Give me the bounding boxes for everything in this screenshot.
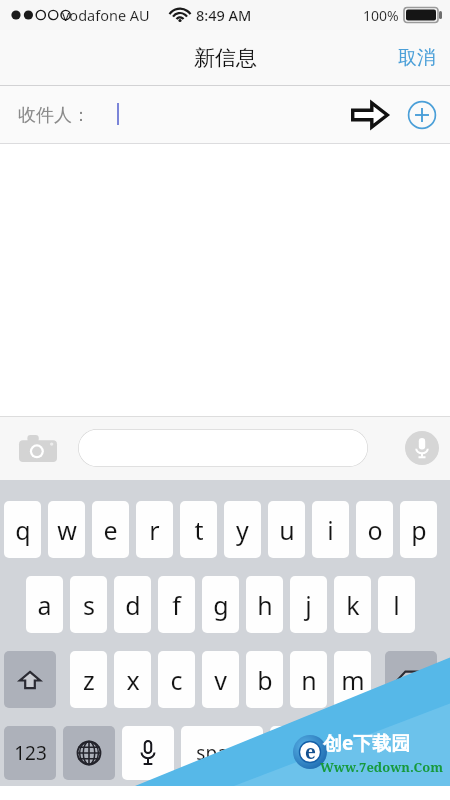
staticText: m — [341, 663, 365, 697]
button[interactable]: 取消 — [394, 40, 440, 76]
staticText: e — [103, 513, 118, 547]
staticText: 100% — [363, 6, 399, 25]
button[interactable]: g — [202, 576, 239, 633]
button[interactable]: p — [400, 501, 437, 558]
button[interactable]: t — [180, 501, 217, 558]
button[interactable]: c — [158, 651, 195, 708]
staticText: i — [327, 513, 334, 547]
button[interactable]: Switch language — [63, 726, 115, 780]
button[interactable]: 123 — [4, 726, 56, 780]
button[interactable] — [78, 429, 368, 467]
button[interactable]: space — [181, 726, 263, 780]
button[interactable]: b — [246, 651, 283, 708]
staticText: 收件人： — [18, 104, 90, 127]
staticText: p — [411, 513, 427, 547]
staticText: j — [305, 588, 312, 622]
button[interactable]: h — [246, 576, 283, 633]
staticText: h — [257, 588, 273, 622]
staticText: c — [170, 663, 183, 697]
button[interactable]: o — [356, 501, 393, 558]
button[interactable]: i — [312, 501, 349, 558]
staticText: g — [213, 588, 229, 622]
staticText: u — [279, 513, 295, 547]
button[interactable]: u — [268, 501, 305, 558]
staticText: t — [194, 513, 204, 547]
staticText: . — [349, 738, 356, 769]
staticText: y — [236, 513, 249, 547]
button[interactable]: Dictate — [405, 431, 439, 465]
staticText: f — [172, 588, 181, 622]
staticText: l — [393, 588, 400, 622]
staticText: vodafone AU — [62, 5, 150, 25]
button[interactable]: r — [136, 501, 173, 558]
button[interactable]: @ — [270, 726, 322, 780]
staticText: v — [214, 663, 227, 697]
button[interactable]: Camera — [16, 431, 60, 465]
staticText: space — [196, 740, 248, 766]
staticText: a — [37, 588, 52, 622]
button[interactable] — [382, 726, 442, 780]
staticText: 取消 — [398, 46, 436, 70]
button[interactable]: n — [290, 651, 327, 708]
staticText: q — [15, 513, 31, 547]
button[interactable]: d — [114, 576, 151, 633]
staticText: d — [125, 588, 141, 622]
button[interactable]: e — [92, 501, 129, 558]
staticText: 创e下载园 — [323, 730, 411, 756]
staticText: 123 — [14, 740, 47, 766]
staticText: @ — [286, 738, 307, 769]
button[interactable]: w — [48, 501, 85, 558]
staticText: 8:49 AM — [196, 5, 252, 25]
button[interactable]: . — [329, 726, 375, 780]
staticText: n — [301, 663, 317, 697]
button[interactable]: q — [4, 501, 41, 558]
button[interactable]: x — [114, 651, 151, 708]
button[interactable]: y — [224, 501, 261, 558]
staticText: z — [83, 663, 95, 697]
button[interactable]: Dictation — [122, 726, 174, 780]
button[interactable]: v — [202, 651, 239, 708]
button[interactable]: m — [334, 651, 371, 708]
staticText: k — [346, 588, 360, 622]
staticText: w — [57, 513, 77, 547]
staticText: Www.7edown.Com — [320, 758, 444, 776]
button[interactable]: j — [290, 576, 327, 633]
button[interactable]: z — [70, 651, 107, 708]
staticText: o — [367, 513, 383, 547]
staticText: b — [257, 663, 273, 697]
button[interactable]: Add contact — [407, 100, 437, 130]
button[interactable]: s — [70, 576, 107, 633]
button[interactable]: Shift — [4, 651, 56, 708]
staticText: r — [149, 513, 160, 547]
button[interactable]: a — [26, 576, 63, 633]
button[interactable]: Backspace — [385, 651, 437, 708]
staticText: e — [305, 739, 316, 765]
staticText: x — [126, 663, 140, 697]
staticText: s — [83, 588, 95, 622]
button[interactable]: f — [158, 576, 195, 633]
button[interactable]: k — [334, 576, 371, 633]
staticText: 新信息 — [194, 45, 257, 71]
button[interactable]: l — [378, 576, 415, 633]
